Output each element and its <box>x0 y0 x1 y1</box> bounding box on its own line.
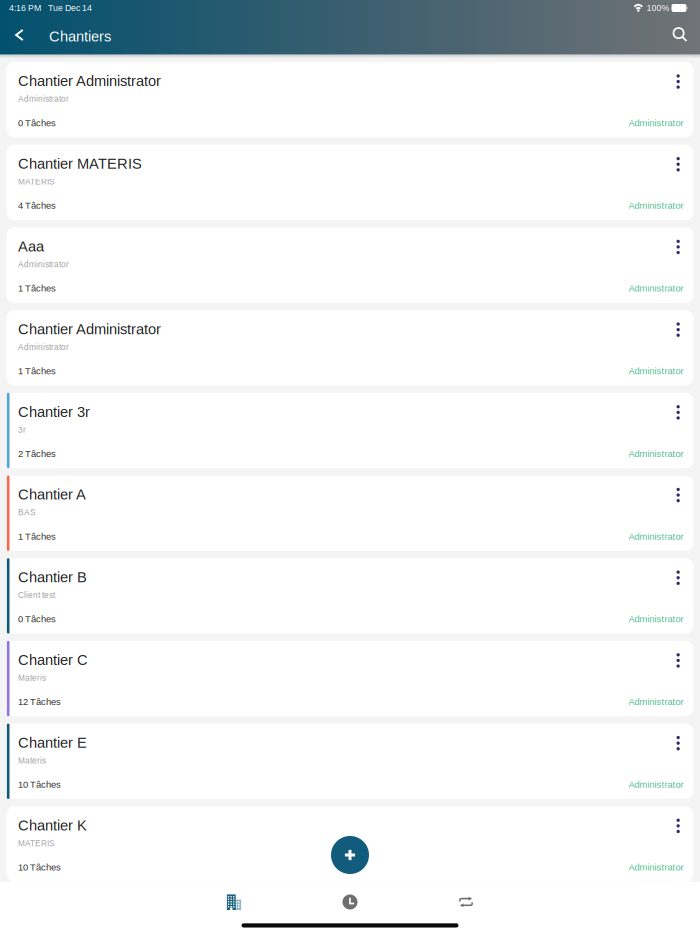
staticText: Chantiers <box>49 28 111 45</box>
staticText: Client test <box>18 591 55 600</box>
staticText: 1 Tâches <box>18 283 56 293</box>
button[interactable]: Chantier C <box>6 641 693 716</box>
staticText: Administrator <box>628 697 683 707</box>
staticText: Chantier B <box>18 569 87 585</box>
button[interactable]: Chantier B <box>6 558 693 634</box>
staticText: Administrator <box>628 448 683 459</box>
button[interactable]: Historique <box>292 890 408 914</box>
staticText: Chantier C <box>18 652 88 668</box>
staticText: 1 Tâches <box>18 531 56 542</box>
button[interactable]: Chantier MATERIS <box>6 145 693 220</box>
staticText: Chantier K <box>18 817 87 833</box>
staticText: Chantier A <box>18 486 86 503</box>
staticText: Administrator <box>628 118 683 128</box>
staticText: 100% <box>646 3 669 13</box>
button[interactable]: Chantiers <box>176 890 292 914</box>
staticText: Aaa <box>18 238 44 255</box>
staticText: 1 Tâches <box>18 366 56 376</box>
staticText: Chantier Administrator <box>18 321 161 337</box>
button[interactable]: Synchronisation <box>408 890 524 914</box>
staticText: Chantier E <box>18 734 87 751</box>
staticText: Chantier MATERIS <box>18 155 142 172</box>
staticText: Materis <box>18 673 46 682</box>
staticText: Administrator <box>628 283 683 293</box>
button[interactable]: Chantier A <box>6 475 693 551</box>
staticText: 12 Tâches <box>18 697 61 707</box>
staticText: Chantier Administrator <box>18 73 161 89</box>
button[interactable]: Chantier E <box>6 724 693 799</box>
staticText: 4:16 PM <box>9 3 41 13</box>
staticText: Administrator <box>628 862 683 872</box>
staticText: Administrator <box>628 200 683 211</box>
staticText: 10 Tâches <box>18 779 61 790</box>
button[interactable]: Search <box>667 21 693 47</box>
staticText: 0 Tâches <box>18 118 56 128</box>
staticText: Materis <box>18 756 46 765</box>
staticText: Administrator <box>628 531 683 542</box>
button[interactable]: Ajouter un chantier <box>331 836 369 874</box>
button[interactable]: Chantier Administrator <box>6 62 693 137</box>
button[interactable]: Chantier Administrator <box>6 310 693 385</box>
staticText: MATERIS <box>18 839 55 848</box>
staticText: Administrator <box>628 614 683 624</box>
staticText: 0 Tâches <box>18 614 56 624</box>
staticText: Administrator <box>18 260 69 269</box>
staticText: Administrator <box>18 342 69 352</box>
button[interactable]: Chantier 3r <box>6 393 693 468</box>
staticText: MATERIS <box>18 177 55 186</box>
staticText: Administrator <box>18 94 69 104</box>
staticText: Administrator <box>628 366 683 376</box>
button[interactable]: Aaa <box>6 227 693 303</box>
staticText: Chantier 3r <box>18 404 90 420</box>
staticText: 10 Tâches <box>18 862 61 872</box>
staticText: 2 Tâches <box>18 448 56 459</box>
staticText: Administrator <box>628 779 683 790</box>
button[interactable]: Chantier K <box>6 806 693 882</box>
staticText: 3r <box>18 425 26 434</box>
staticText: BAS <box>18 508 36 517</box>
staticText: 4 Tâches <box>18 200 56 211</box>
staticText: Tue Dec 14 <box>48 3 92 13</box>
button[interactable]: Back <box>6 22 32 48</box>
